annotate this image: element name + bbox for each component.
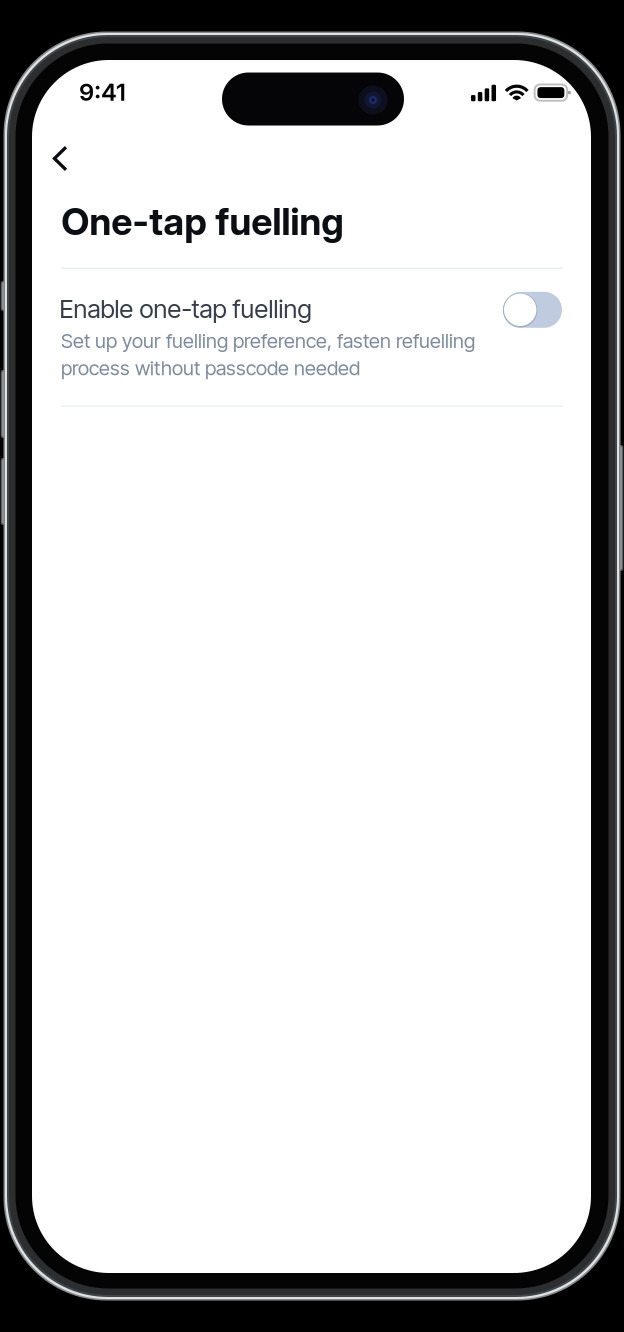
button[interactable]: Back xyxy=(37,135,83,181)
staticText: 9:41 xyxy=(79,77,126,106)
button[interactable]: Enable one-tap fuelling xyxy=(496,285,569,335)
staticText: One-tap fuelling xyxy=(61,199,344,244)
staticText: Set up your fuelling preference, fasten … xyxy=(61,328,475,380)
button[interactable]: Enable one-tap fuelling xyxy=(32,268,591,405)
staticText: Enable one-tap fuelling xyxy=(59,293,311,324)
